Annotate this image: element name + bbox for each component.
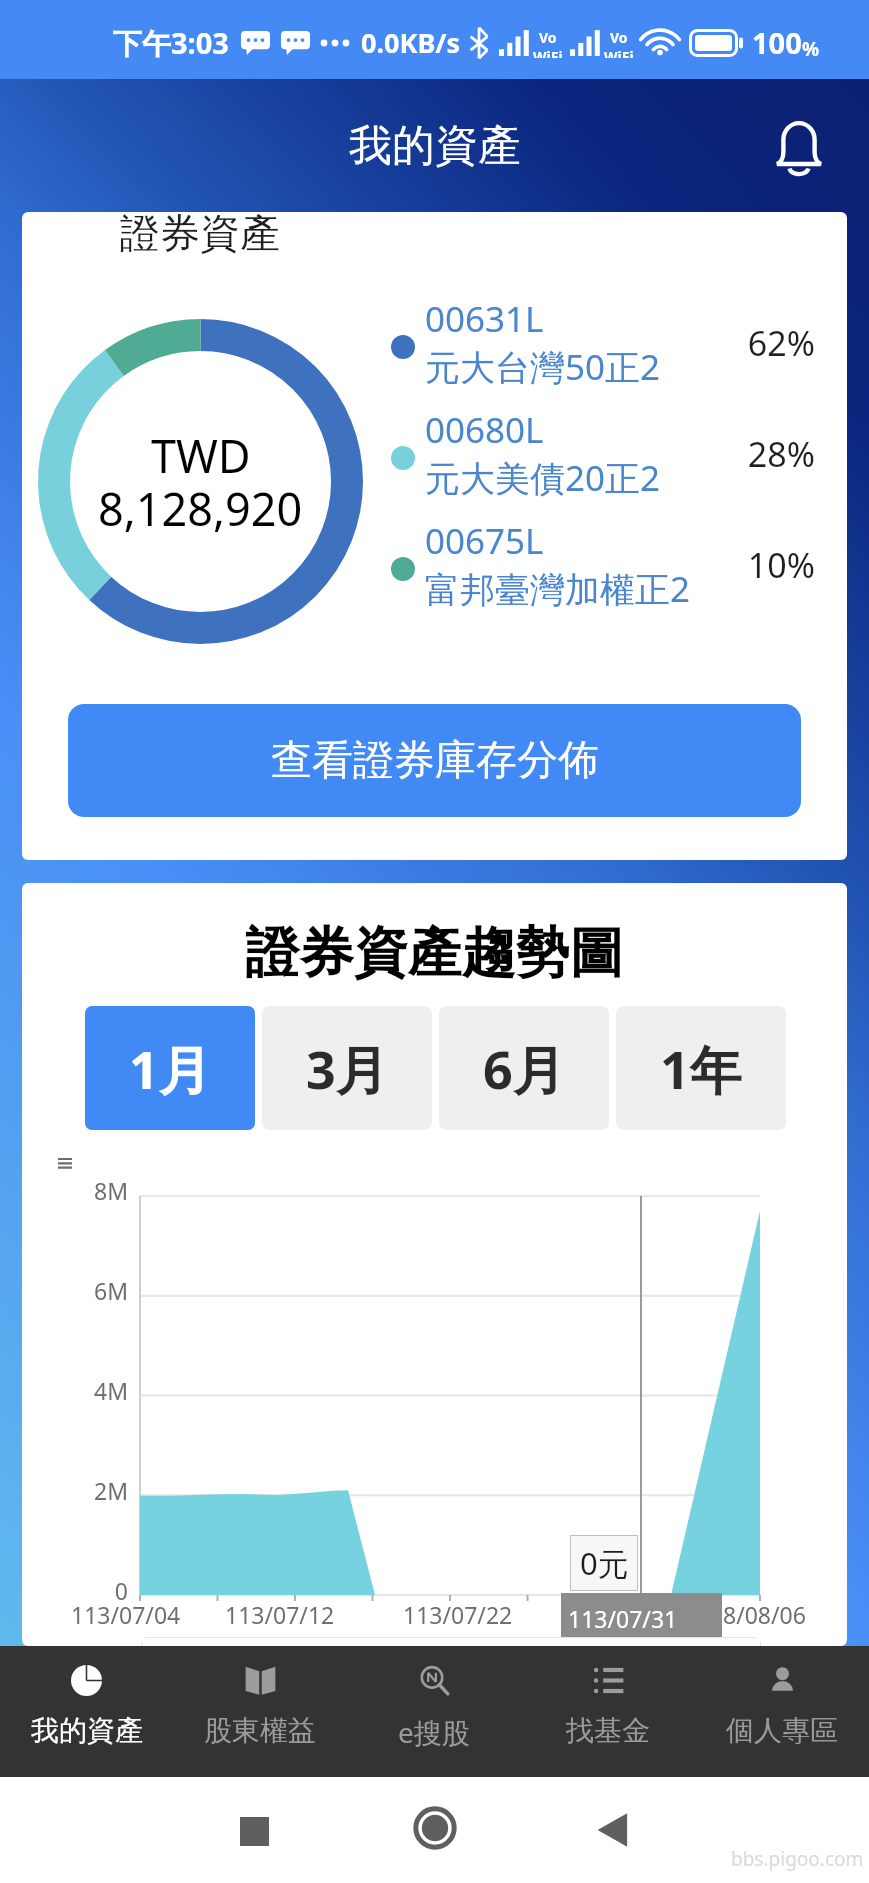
staticText: 28% xyxy=(730,431,815,477)
staticText: 下午3:03 xyxy=(113,23,229,63)
staticText: 62% xyxy=(730,320,815,366)
staticText: 找基金 xyxy=(566,1713,650,1748)
staticText: 1年 xyxy=(660,1033,742,1104)
button[interactable]: 6月 xyxy=(439,1006,609,1130)
staticText: 10% xyxy=(730,542,815,588)
staticText: 元大台灣50正2 xyxy=(425,343,661,391)
staticText: 1月 xyxy=(129,1033,211,1104)
button[interactable]: 查看證券庫存分佈 xyxy=(68,704,801,817)
staticText: 0 xyxy=(22,1575,128,1606)
staticText: Vo xyxy=(610,28,628,47)
staticText: 8,128,920 xyxy=(98,478,303,539)
staticText: 個人專區 xyxy=(726,1713,838,1748)
staticText: 6M xyxy=(22,1275,128,1306)
staticText: 0.0KB/s xyxy=(361,24,461,61)
staticText: 100 xyxy=(752,23,802,62)
staticText: 我的資產 xyxy=(31,1713,143,1748)
staticText: 證券資產 xyxy=(120,212,280,258)
staticText: 證券資產趨勢圖 xyxy=(22,919,847,987)
staticText: bbs.pigoo.com xyxy=(731,1846,864,1872)
button[interactable]: 股東權益 xyxy=(173,1646,347,1777)
button[interactable]: 1年 xyxy=(616,1006,786,1130)
staticText: 3月 xyxy=(306,1033,388,1104)
staticText: 00675L xyxy=(425,517,544,565)
staticText: e搜股 xyxy=(398,1713,470,1751)
staticText: 0元 xyxy=(580,1542,629,1584)
button[interactable]: Notifications xyxy=(757,104,841,188)
staticText: 富邦臺灣加權正2 xyxy=(425,565,691,613)
staticText: 113/07/12 xyxy=(225,1599,335,1630)
staticText: 8M xyxy=(22,1175,128,1206)
staticText: 4M xyxy=(22,1375,128,1406)
staticText: 股東權益 xyxy=(204,1713,316,1748)
button[interactable]: 找基金 xyxy=(521,1646,695,1777)
staticText: Vo xyxy=(539,28,557,47)
staticText: 我的資產 xyxy=(349,119,521,173)
staticText: 查看證券庫存分佈 xyxy=(271,735,599,787)
staticText: 00680L xyxy=(425,406,544,454)
staticText: 8/08/06 xyxy=(723,1599,806,1630)
staticText: TWD xyxy=(151,425,251,486)
staticText: 113/07/31 xyxy=(568,1603,678,1634)
staticText: 6月 xyxy=(483,1033,565,1104)
button[interactable]: 3月 xyxy=(262,1006,432,1130)
staticText: 00631L xyxy=(425,295,544,343)
staticText: WiFi xyxy=(533,47,563,58)
button[interactable]: 我的資產 xyxy=(0,1646,173,1777)
staticText: 113/07/04 xyxy=(71,1599,181,1630)
button[interactable]: Home xyxy=(408,1801,462,1855)
button[interactable]: Back xyxy=(585,1803,639,1857)
button[interactable]: 個人專區 xyxy=(695,1646,869,1777)
staticText: WiFi xyxy=(604,47,634,58)
staticText: % xyxy=(802,36,820,62)
staticText: 113/07/22 xyxy=(403,1599,513,1630)
staticText: 元大美債20正2 xyxy=(425,454,661,502)
button[interactable]: 1月 xyxy=(85,1006,255,1130)
button[interactable]: e搜股 xyxy=(347,1646,521,1777)
button[interactable]: Recents xyxy=(227,1804,281,1858)
staticText: 2M xyxy=(22,1475,128,1506)
